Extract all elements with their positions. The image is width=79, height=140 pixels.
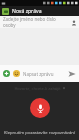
- button[interactable]: Add attachment: [2, 69, 11, 78]
- staticText: Napsat zprávu: [23, 71, 54, 77]
- button[interactable]: Zadejte jméno nebo číslo osoby: [3, 16, 65, 28]
- button[interactable]: Choose contact: [68, 17, 79, 28]
- staticText: Klepnutím pozastavíte rozpoznávání: [0, 130, 79, 136]
- button[interactable]: App icon: [2, 8, 9, 15]
- button[interactable]: Pause voice recognition: [30, 98, 50, 118]
- button[interactable]: Napsat zprávu: [23, 71, 64, 77]
- button[interactable]: Send: [66, 68, 77, 79]
- button[interactable]: Emoji: [12, 69, 21, 78]
- staticText: Nová zpráva: [12, 8, 42, 15]
- staticText: Hovorte, chcete-li zahájit: [14, 86, 61, 91]
- staticText: Zadejte jméno nebo číslo osoby: [3, 16, 65, 28]
